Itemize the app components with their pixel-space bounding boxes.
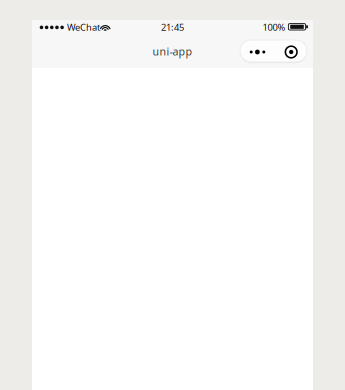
- staticText: 21:45: [161, 21, 184, 33]
- staticText: 100%: [262, 21, 285, 33]
- button[interactable]: More: [241, 41, 274, 63]
- button[interactable]: Close mini program: [274, 41, 308, 63]
- staticText: WeChat: [67, 21, 100, 33]
- staticText: uni-app: [152, 44, 192, 58]
